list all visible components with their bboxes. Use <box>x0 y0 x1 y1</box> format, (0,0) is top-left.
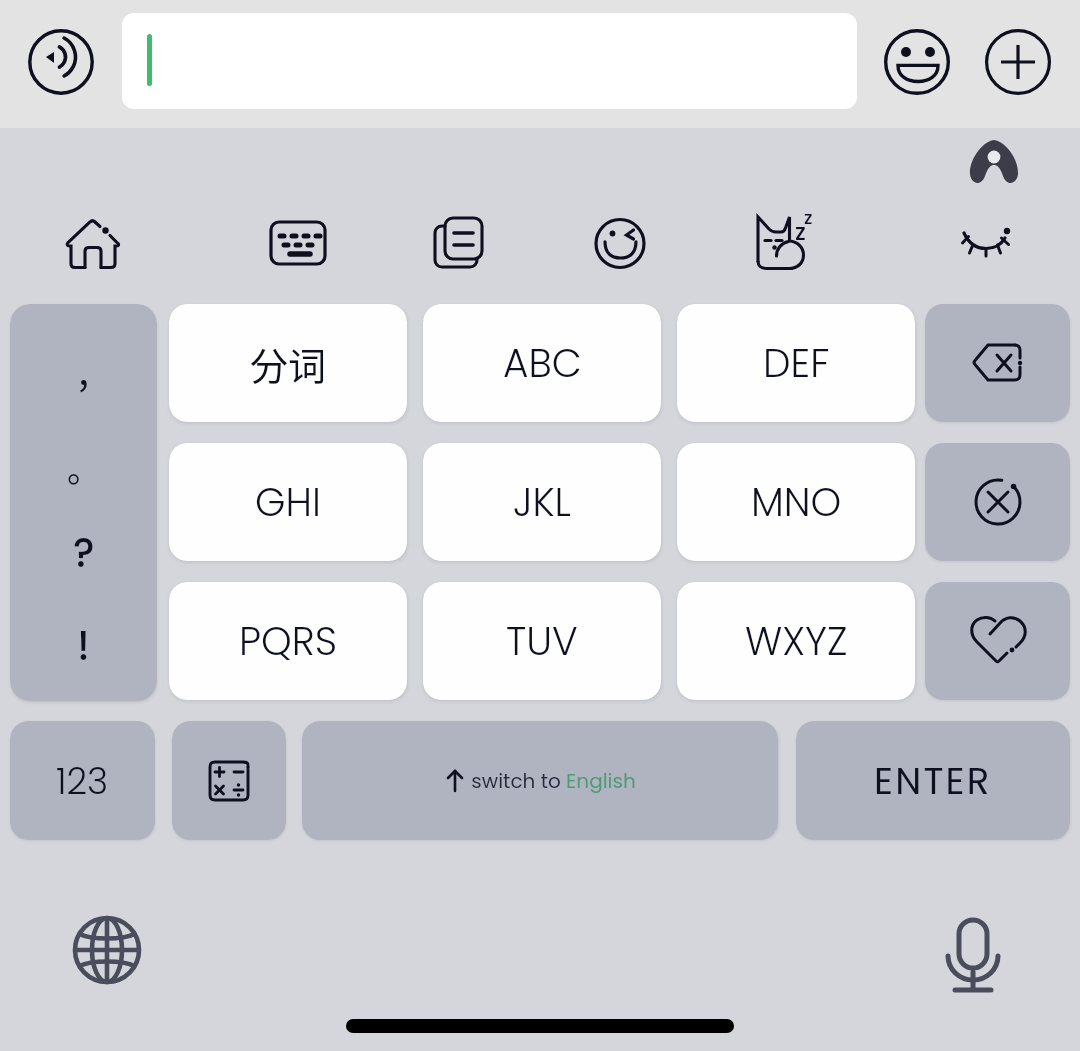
staticText: 。 <box>67 443 101 492</box>
button[interactable]: Clear <box>925 443 1070 561</box>
button[interactable]: Theme <box>740 205 816 281</box>
button[interactable]: ENTER <box>796 721 1070 840</box>
button[interactable]: ABC <box>423 304 661 422</box>
button[interactable]: Voice input <box>938 910 1008 980</box>
button[interactable]: Clipboard <box>421 205 497 281</box>
button[interactable]: Backspace <box>925 304 1070 422</box>
button[interactable]: Home <box>55 205 131 281</box>
staticText: z <box>795 216 806 248</box>
button[interactable]: Change language <box>72 915 142 985</box>
button[interactable]: Voice input <box>28 29 94 95</box>
staticText: ABC <box>503 336 582 391</box>
staticText: ENTER <box>874 755 992 807</box>
button[interactable]: MNO <box>677 443 915 561</box>
button[interactable]: 123 <box>10 721 155 840</box>
button[interactable]: Emoji <box>884 29 950 95</box>
staticText: , <box>78 339 90 397</box>
button[interactable]: Favorites <box>925 582 1070 700</box>
button[interactable]: Symbols <box>172 721 286 840</box>
staticText: WXYZ <box>745 614 848 669</box>
button[interactable]: GHI <box>169 443 407 561</box>
button[interactable]: JKL <box>423 443 661 561</box>
staticText: JKL <box>513 475 572 530</box>
button[interactable]: WXYZ <box>677 582 915 700</box>
button[interactable]: DEF <box>677 304 915 422</box>
staticText: 分词 <box>250 336 327 391</box>
staticText: GHI <box>255 475 321 530</box>
staticText: 123 <box>56 756 109 806</box>
button[interactable]: 分词 <box>169 304 407 422</box>
staticText: PQRS <box>239 614 337 669</box>
button[interactable]: switch to English <box>302 721 778 840</box>
button[interactable]: Hide keyboard <box>948 205 1024 281</box>
button[interactable]: Add <box>985 29 1051 95</box>
staticText: switch to English <box>466 767 636 795</box>
button[interactable]: PQRS <box>169 582 407 700</box>
button[interactable]: Emoticons <box>582 205 658 281</box>
button[interactable]: TUV <box>423 582 661 700</box>
button[interactable]: , <box>10 304 157 701</box>
staticText: DEF <box>763 336 830 391</box>
staticText: MNO <box>751 475 842 530</box>
staticText: ? <box>73 525 95 581</box>
staticText: TUV <box>506 614 578 669</box>
staticText: ! <box>77 618 90 674</box>
staticText: z <box>804 205 813 230</box>
button[interactable] <box>122 13 857 109</box>
button[interactable]: Keyboard <box>259 205 335 281</box>
